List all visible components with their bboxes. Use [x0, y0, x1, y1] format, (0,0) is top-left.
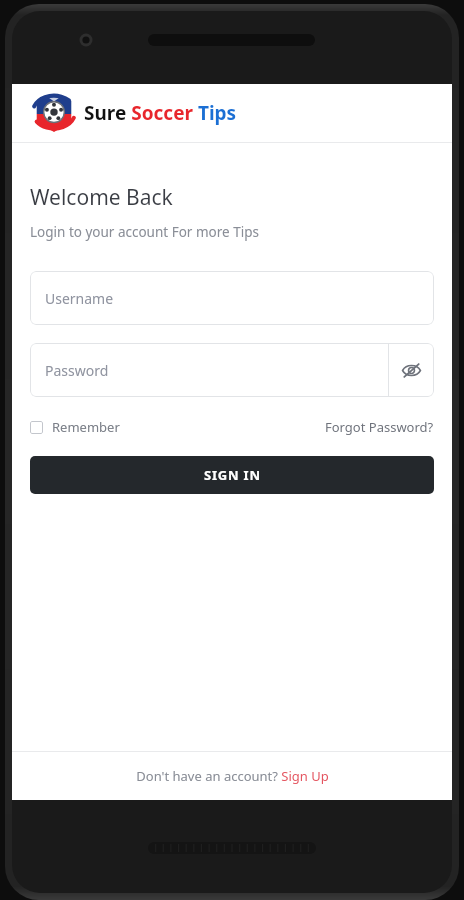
- staticText: Don't have an account? Sign Up: [136, 767, 329, 785]
- button[interactable]: Show password: [389, 343, 434, 397]
- button[interactable]: Sure Soccer Tips: [30, 91, 237, 135]
- button[interactable]: Forgot Password?: [325, 418, 434, 436]
- staticText: Remember: [52, 418, 120, 436]
- staticText: Sure Soccer Tips: [84, 100, 237, 126]
- staticText: Forgot Password?: [325, 418, 434, 436]
- button[interactable]: Don't have an account? Sign Up: [136, 767, 329, 785]
- staticText: Username: [45, 289, 114, 308]
- staticText: SIGN IN: [204, 466, 261, 484]
- button[interactable]: Username: [30, 271, 434, 325]
- button[interactable]: SIGN IN: [30, 456, 434, 494]
- button[interactable]: Password: [30, 343, 388, 397]
- staticText: Password: [45, 361, 109, 380]
- staticText: Welcome Back: [30, 183, 173, 212]
- staticText: Login to your account For more Tips: [30, 223, 259, 241]
- button[interactable]: Remember: [30, 418, 120, 436]
